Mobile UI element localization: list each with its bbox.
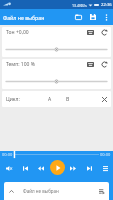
staticText: Тон +0,00 <box>6 29 29 36</box>
button[interactable]: Open file <box>71 9 86 25</box>
staticText: Темп: 100 % <box>6 61 35 68</box>
button[interactable]: Save <box>86 9 100 25</box>
staticText: Файл не выбран <box>3 14 45 21</box>
button[interactable]: Enter value <box>83 27 97 38</box>
button[interactable]: Fast forward <box>65 156 81 178</box>
staticText: 00:00 <box>100 152 111 157</box>
button[interactable]: Expand <box>4 184 19 199</box>
button[interactable]: Play <box>50 160 65 175</box>
button[interactable]: Previous <box>17 156 33 178</box>
button[interactable]: Reset <box>97 59 111 70</box>
button[interactable]: Rewind <box>33 156 49 178</box>
staticText: B <box>66 96 70 103</box>
button[interactable]: Volume <box>0 156 17 178</box>
button[interactable]: Playlist <box>97 156 113 178</box>
button[interactable]: B <box>61 93 74 106</box>
button[interactable]: Playlist <box>94 184 109 199</box>
staticText: 00:00 <box>2 152 13 157</box>
staticText: 22:36 <box>101 2 112 8</box>
button[interactable]: Next <box>81 156 97 178</box>
staticText: A <box>48 96 52 103</box>
button[interactable]: Reset <box>97 27 111 38</box>
button[interactable]: Expand <box>4 182 109 200</box>
button[interactable]: A <box>43 93 56 106</box>
staticText: Цикл: <box>6 96 20 103</box>
staticText: Файл не выбран <box>23 188 59 194</box>
button[interactable]: More options <box>100 9 113 25</box>
staticText: 13.4KB/s <box>72 3 87 8</box>
button[interactable]: Enter value <box>83 59 97 70</box>
button[interactable]: Clear loop <box>98 93 111 106</box>
